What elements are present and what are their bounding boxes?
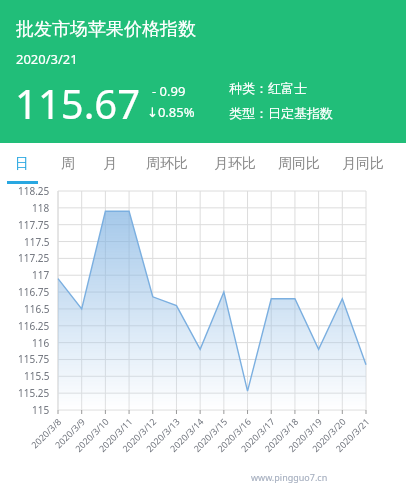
button[interactable]: 周同比	[271, 143, 327, 185]
staticText: 周	[61, 155, 75, 173]
button[interactable]: 周环比	[139, 143, 195, 185]
button[interactable]: 月环比	[207, 143, 263, 185]
staticText: 115.67	[15, 76, 141, 130]
staticText: 周同比	[278, 155, 320, 173]
staticText: ↓0.85%	[147, 103, 195, 121]
staticText: 种类：红富士	[229, 80, 307, 96]
staticText: 类型：日定基指数	[229, 105, 333, 121]
button[interactable]: 月同比	[335, 143, 391, 185]
staticText: 月环比	[214, 155, 256, 173]
staticText: - 0.99	[152, 82, 186, 100]
staticText: 批发市场苹果价格指数	[16, 18, 196, 41]
staticText: 2020/3/21	[16, 50, 78, 68]
button[interactable]: 日	[7, 143, 37, 185]
staticText: 周环比	[146, 155, 188, 173]
staticText: 月	[103, 155, 117, 173]
staticText: 日	[15, 155, 29, 173]
button[interactable]: 周	[53, 143, 83, 185]
button[interactable]: 月	[95, 143, 125, 185]
staticText: 月同比	[342, 155, 384, 173]
